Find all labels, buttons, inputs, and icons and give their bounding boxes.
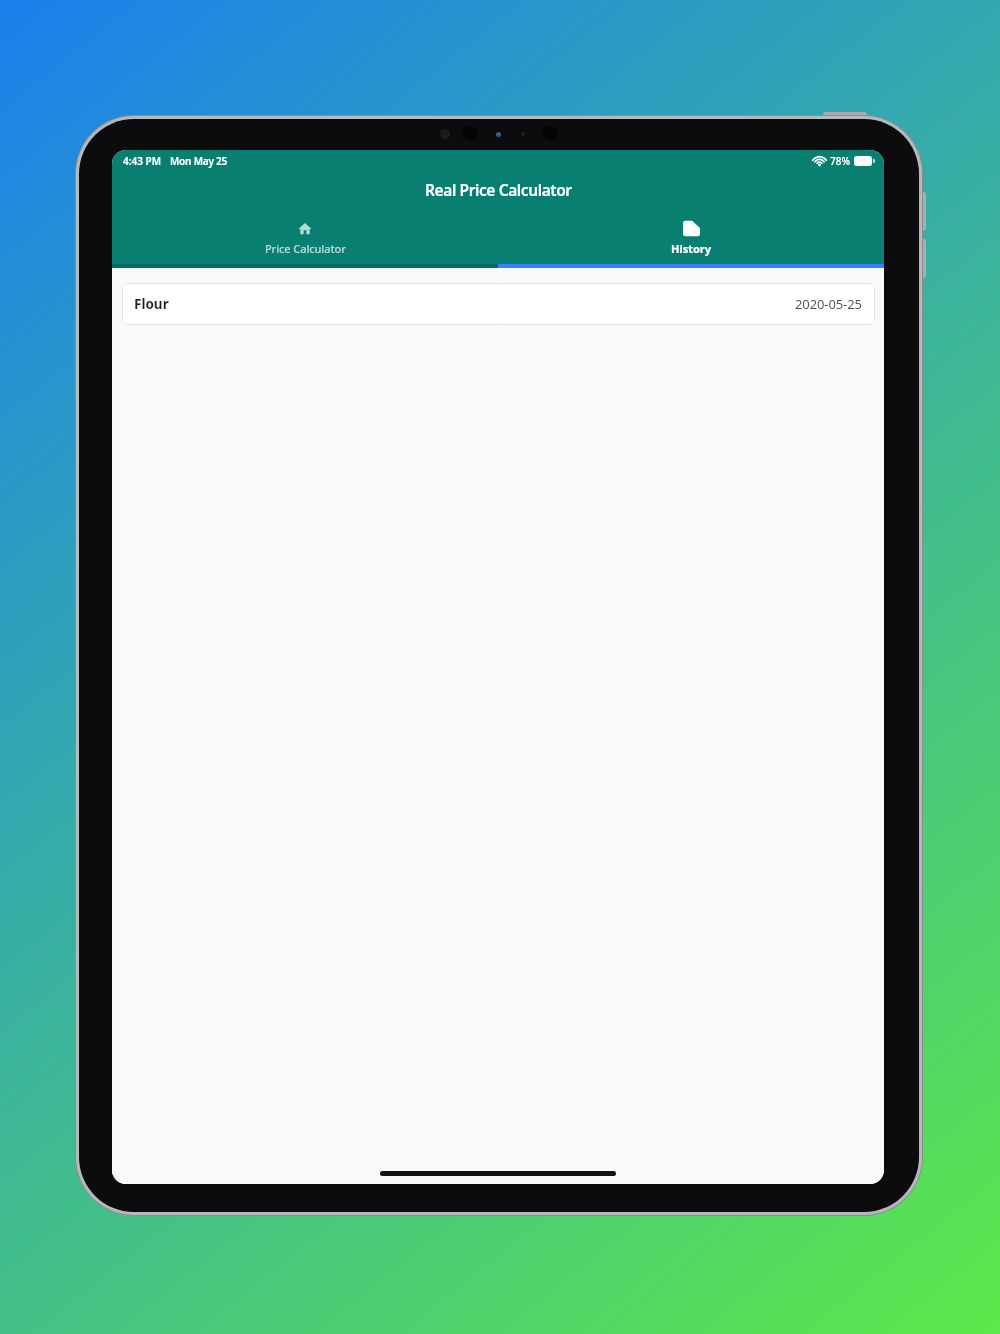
staticText: 2020-05-25 (795, 295, 862, 313)
staticText: Real Price Calculator (425, 179, 572, 200)
button[interactable]: History (498, 212, 884, 264)
staticText: 78% (830, 154, 850, 168)
staticText: Mon May 25 (170, 154, 228, 168)
staticText: Price Calculator (265, 241, 346, 256)
staticText: 4:43 PM (123, 154, 161, 168)
button[interactable]: Price Calculator (112, 212, 498, 264)
staticText: Flour (134, 295, 169, 313)
staticText: History (671, 241, 712, 256)
button[interactable]: Flour (122, 283, 875, 325)
